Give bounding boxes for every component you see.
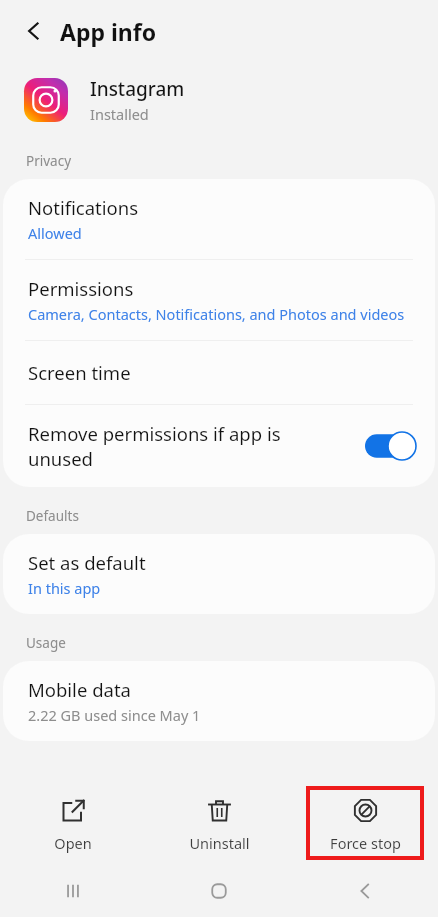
button[interactable]: Permissions [3, 260, 435, 340]
staticText: Screen time [28, 360, 131, 385]
staticText: Force stop [330, 833, 401, 853]
staticText: Set as default [28, 550, 146, 575]
button[interactable]: Screen time [3, 341, 435, 404]
button[interactable]: Mobile data [3, 661, 435, 741]
button[interactable]: Instagram [0, 62, 438, 138]
staticText: Instagram [90, 76, 185, 102]
button[interactable]: Remove permissions if app is unused [3, 405, 435, 487]
staticText: Open [54, 833, 92, 853]
staticText: Permissions [28, 276, 134, 301]
staticText: Mobile data [28, 677, 131, 702]
button[interactable]: Back [14, 11, 54, 51]
staticText: Notifications [28, 195, 139, 220]
button[interactable]: Open [16, 788, 130, 858]
staticText: Defaults [26, 507, 79, 525]
staticText: App info [60, 16, 157, 47]
button[interactable]: Home [146, 865, 292, 917]
button[interactable]: Uninstall [162, 788, 276, 858]
staticText: 2.22 GB used since May 1 [28, 705, 201, 725]
button[interactable]: Notifications [3, 179, 435, 259]
staticText: Camera, Contacts, Notifications, and Pho… [28, 304, 405, 324]
button[interactable]: Recents [0, 865, 146, 917]
staticText: Remove permissions if app is unused [28, 421, 347, 471]
button[interactable]: Back [292, 865, 438, 917]
staticText: Usage [26, 634, 66, 652]
staticText: Installed [90, 104, 149, 124]
staticText: Allowed [28, 223, 82, 243]
staticText: In this app [28, 578, 101, 598]
staticText: Uninstall [189, 833, 250, 853]
staticText: Privacy [26, 152, 72, 170]
button[interactable]: Set as default [3, 534, 435, 614]
button[interactable]: Force stop [308, 788, 422, 858]
